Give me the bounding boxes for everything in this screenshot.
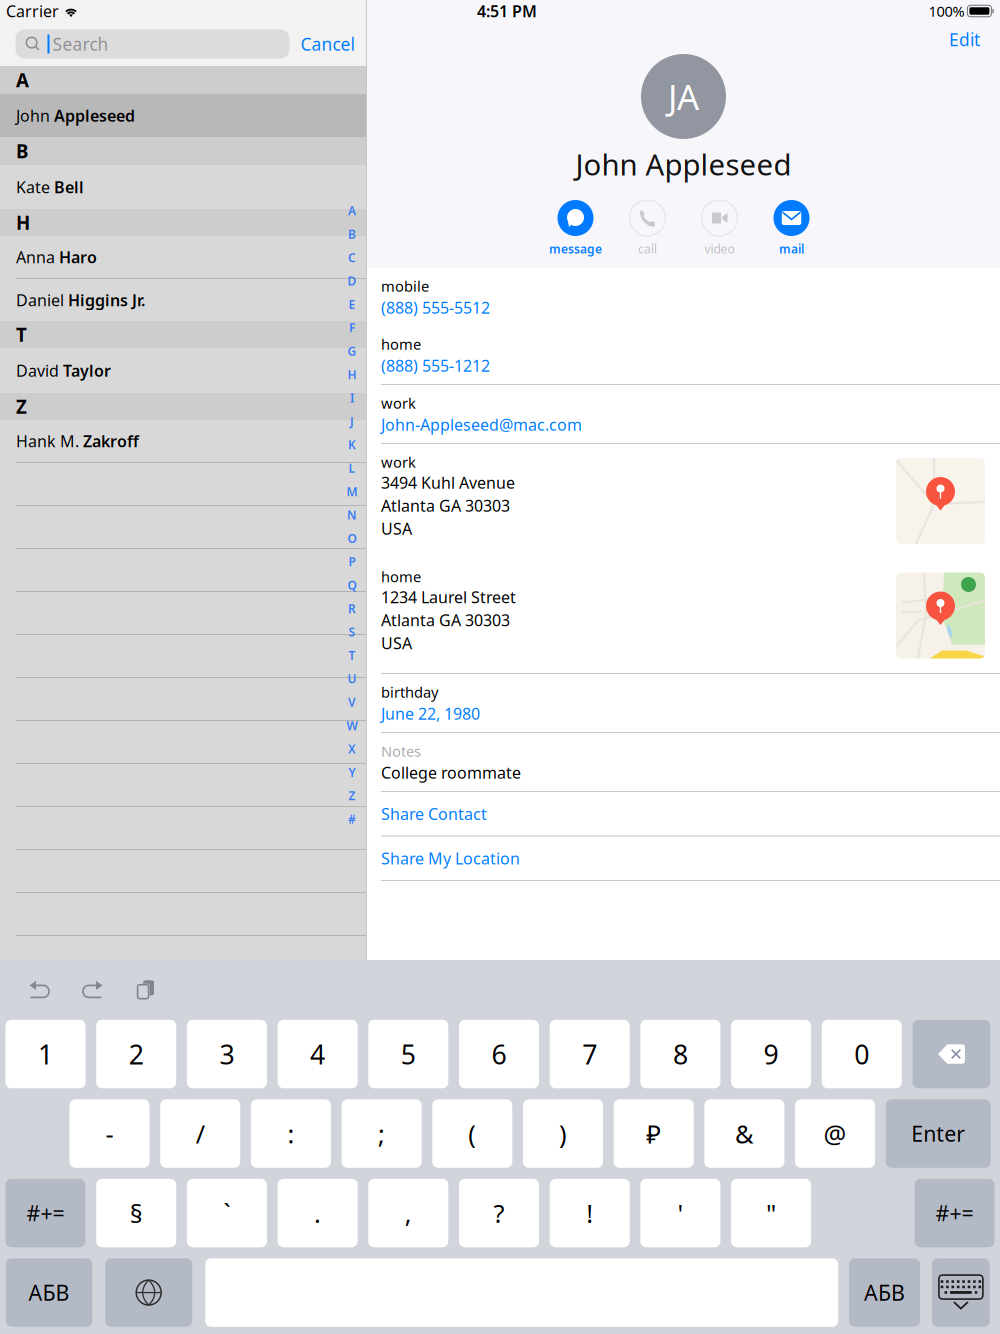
button[interactable]: 9 (731, 1020, 811, 1088)
staticText: JA (668, 73, 699, 119)
button[interactable]: АБВ (849, 1258, 920, 1327)
button[interactable]: mobile (367, 268, 1000, 326)
staticText: : (287, 1117, 294, 1150)
button[interactable]: N (342, 503, 362, 527)
button[interactable]: E (342, 293, 362, 316)
button[interactable]: - (69, 1099, 149, 1168)
button[interactable]: L (342, 456, 362, 480)
button[interactable]: ' (640, 1179, 720, 1247)
button[interactable]: Anna Haro (0, 236, 366, 279)
button[interactable]: P (342, 550, 362, 573)
staticText: #+= (26, 1199, 64, 1227)
button[interactable]: Edit (935, 22, 1000, 54)
staticText: June 22, 1980 (381, 703, 480, 724)
button[interactable]: #+= (914, 1179, 994, 1247)
button[interactable]: § (96, 1179, 176, 1247)
staticText: Hank M. Zakroff (16, 430, 139, 452)
button[interactable]: David Taylor (0, 348, 366, 393)
button[interactable]: John Appleseed (0, 94, 366, 137)
button[interactable]: ₽ (614, 1099, 694, 1168)
button[interactable]: mail (755, 200, 827, 257)
staticText: АБВ (864, 1278, 905, 1307)
button[interactable]: Share My Location (367, 836, 1000, 880)
button[interactable]: 2 (96, 1020, 176, 1088)
button[interactable]: 6 (459, 1020, 539, 1088)
button[interactable]: & (704, 1099, 784, 1168)
button[interactable]: C (342, 246, 362, 269)
button[interactable]: @ (795, 1099, 875, 1168)
button[interactable]: home (367, 326, 1000, 384)
button[interactable]: ? (459, 1179, 539, 1247)
button[interactable]: F (342, 316, 362, 339)
button[interactable]: Daniel Higgins Jr. (0, 279, 366, 321)
button[interactable]: Hank M. Zakroff (0, 420, 366, 463)
button[interactable]: : (251, 1099, 331, 1168)
button[interactable]: R (342, 597, 362, 620)
button[interactable]: O (342, 527, 362, 550)
button[interactable]: A (342, 199, 362, 222)
button[interactable]: M (342, 480, 362, 503)
button[interactable]: call (611, 200, 683, 257)
button[interactable]: Kate Bell (0, 165, 366, 209)
button[interactable]: B (342, 222, 362, 246)
button[interactable]: Dismiss keyboard (932, 1258, 990, 1327)
staticText: M (346, 483, 357, 499)
button[interactable]: Redo (66, 970, 119, 1010)
button[interactable]: U (342, 667, 362, 690)
button[interactable]: Q (342, 573, 362, 597)
button[interactable]: T (342, 644, 362, 667)
button[interactable]: Z (342, 784, 362, 807)
button[interactable]: X (342, 737, 362, 761)
staticText: work (381, 452, 416, 472)
button[interactable]: , (368, 1179, 448, 1247)
button[interactable]: #+= (5, 1179, 85, 1247)
button[interactable]: H (342, 363, 362, 386)
button[interactable]: 7 (550, 1020, 630, 1088)
button[interactable]: 3 (187, 1020, 267, 1088)
button[interactable]: Delete (912, 1020, 990, 1088)
button[interactable]: АБВ (6, 1258, 92, 1327)
button[interactable]: home (367, 558, 1000, 673)
button[interactable]: Undo (13, 970, 66, 1010)
button[interactable]: W (342, 714, 362, 737)
button[interactable]: Enter (886, 1099, 991, 1168)
button[interactable]: I (342, 386, 362, 410)
staticText: USA (381, 632, 412, 654)
button[interactable]: / (160, 1099, 240, 1168)
button[interactable]: D (342, 269, 362, 293)
button[interactable]: 5 (368, 1020, 448, 1088)
button[interactable]: Next keyboard (105, 1258, 192, 1327)
staticText: message (549, 241, 602, 257)
staticText: Y (348, 764, 355, 780)
button[interactable]: 8 (640, 1020, 720, 1088)
staticText: John-Appleseed@mac.com (381, 414, 582, 435)
button[interactable]: G (342, 339, 362, 363)
button[interactable]: Notes (367, 733, 1000, 791)
button[interactable]: ! (550, 1179, 630, 1247)
staticText: H (16, 210, 30, 235)
button[interactable]: birthday (367, 674, 1000, 732)
button[interactable]: 4 (278, 1020, 358, 1088)
button[interactable]: message (539, 200, 611, 257)
button[interactable]: J (342, 410, 362, 433)
button[interactable]: 1 (5, 1020, 85, 1088)
button[interactable]: Paste (119, 970, 172, 1010)
button[interactable]: Share Contact (367, 792, 1000, 835)
button[interactable]: # (342, 807, 362, 831)
button[interactable]: Cancel (300, 32, 354, 55)
button[interactable]: ; (342, 1099, 422, 1168)
button[interactable]: Y (342, 761, 362, 784)
button[interactable]: ( (432, 1099, 512, 1168)
button[interactable]: K (342, 433, 362, 456)
button[interactable]: work (367, 385, 1000, 443)
button[interactable]: 0 (822, 1020, 902, 1088)
button[interactable]: . (278, 1179, 358, 1247)
button[interactable]: video (683, 200, 755, 257)
button[interactable]: ` (187, 1179, 267, 1247)
button[interactable]: V (342, 690, 362, 714)
button[interactable]: work (367, 444, 1000, 558)
button[interactable]: " (731, 1179, 811, 1247)
button[interactable]: ) (523, 1099, 603, 1168)
button[interactable]: S (342, 620, 362, 644)
